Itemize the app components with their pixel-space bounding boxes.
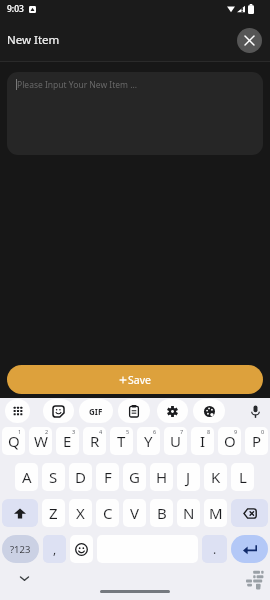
staticText: H xyxy=(156,467,168,487)
staticText: R xyxy=(90,431,100,451)
button[interactable]: Symbols xyxy=(2,535,39,563)
staticText: J xyxy=(186,467,191,487)
button[interactable]: GIF xyxy=(79,399,113,423)
staticText: M xyxy=(209,503,223,523)
button[interactable]: Emoji xyxy=(70,535,93,563)
staticText: 9 xyxy=(234,428,238,435)
staticText: P xyxy=(252,431,262,451)
button[interactable]: Clipboard xyxy=(118,399,150,423)
button[interactable]: Comma xyxy=(43,535,66,563)
button[interactable]: F xyxy=(96,463,119,491)
button[interactable]: P xyxy=(245,427,268,455)
staticText: B xyxy=(157,503,167,523)
button[interactable]: Please Input Your New Item ... xyxy=(7,72,263,155)
staticText: Q xyxy=(8,431,20,451)
button[interactable]: C xyxy=(96,499,119,527)
staticText: I xyxy=(200,431,206,451)
staticText: G xyxy=(129,467,140,487)
button[interactable]: J xyxy=(177,463,200,491)
button[interactable]: H xyxy=(150,463,173,491)
staticText: S xyxy=(49,467,58,487)
staticText: L xyxy=(239,467,247,487)
button[interactable]: O xyxy=(218,427,241,455)
button[interactable]: M xyxy=(204,499,227,527)
staticText: 1 xyxy=(18,428,22,435)
button[interactable]: K xyxy=(204,463,227,491)
staticText: A xyxy=(22,467,32,487)
staticText: 5 xyxy=(126,428,130,435)
button[interactable]: B xyxy=(150,499,173,527)
button[interactable]: Close xyxy=(237,28,262,53)
staticText: D xyxy=(75,467,86,487)
staticText: Y xyxy=(144,431,153,451)
staticText: U xyxy=(170,431,181,451)
button[interactable]: L xyxy=(231,463,254,491)
button[interactable]: Period xyxy=(202,535,227,563)
button[interactable]: E xyxy=(56,427,79,455)
staticText: 8 xyxy=(207,428,211,435)
button[interactable]: Settings xyxy=(157,399,188,423)
button[interactable]: N xyxy=(177,499,200,527)
staticText: ?123 xyxy=(10,543,31,556)
staticText: 0 xyxy=(261,428,265,435)
button[interactable]: W xyxy=(29,427,52,455)
staticText: 2 xyxy=(45,428,49,435)
staticText: X xyxy=(76,503,85,523)
staticText: 4 xyxy=(99,428,103,435)
button[interactable]: Stickers xyxy=(43,399,74,423)
staticText: 6 xyxy=(153,428,157,435)
button[interactable]: Save xyxy=(7,365,263,394)
button[interactable]: Hide keyboard xyxy=(20,576,29,581)
staticText: E xyxy=(63,431,72,451)
staticText: C xyxy=(103,503,113,523)
staticText: 7 xyxy=(180,428,184,435)
button[interactable]: R xyxy=(83,427,106,455)
staticText: 9:03 xyxy=(7,3,24,15)
button[interactable]: X xyxy=(69,499,92,527)
button[interactable]: Shift xyxy=(2,499,38,527)
button[interactable]: Apps xyxy=(5,399,30,423)
button[interactable]: A xyxy=(15,463,38,491)
button[interactable]: Z xyxy=(42,499,65,527)
staticText: W xyxy=(34,431,48,451)
button[interactable]: I xyxy=(191,427,214,455)
staticText: K xyxy=(211,467,221,487)
button[interactable]: Switch input method xyxy=(244,570,264,590)
button[interactable]: S xyxy=(42,463,65,491)
button[interactable]: D xyxy=(69,463,92,491)
button[interactable]: G xyxy=(123,463,146,491)
staticText: Save xyxy=(128,373,151,387)
staticText: New Item xyxy=(7,32,60,48)
staticText: . xyxy=(213,541,217,557)
button[interactable]: Theme xyxy=(193,399,225,423)
button[interactable]: Enter xyxy=(231,535,268,563)
button[interactable]: Voice input xyxy=(244,399,266,423)
button[interactable]: Q xyxy=(2,427,25,455)
staticText: GIF xyxy=(89,406,103,417)
button[interactable]: V xyxy=(123,499,146,527)
staticText: V xyxy=(130,503,140,523)
staticText: , xyxy=(53,541,57,557)
staticText: N xyxy=(183,503,195,523)
button[interactable]: U xyxy=(164,427,187,455)
staticText: Z xyxy=(49,503,58,523)
button[interactable]: Y xyxy=(137,427,160,455)
staticText: T xyxy=(117,431,126,451)
staticText: Please Input Your New Item ... xyxy=(17,79,138,91)
staticText: O xyxy=(224,431,236,451)
staticText: F xyxy=(104,467,112,487)
button[interactable]: Backspace xyxy=(231,499,268,527)
button[interactable]: T xyxy=(110,427,133,455)
staticText: 3 xyxy=(72,428,76,435)
